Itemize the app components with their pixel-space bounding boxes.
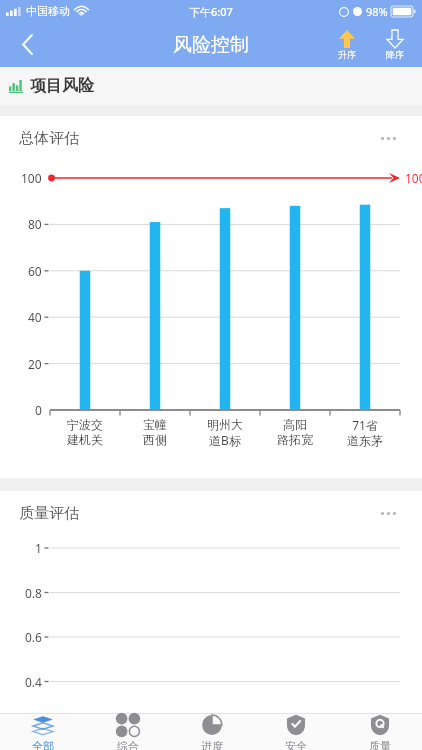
button[interactable]: 质量 <box>338 714 422 750</box>
staticText: 项目风险 <box>30 76 94 96</box>
staticText: 98% <box>366 4 388 19</box>
staticText: 60 <box>28 263 42 279</box>
staticText: 西侧 <box>143 432 167 447</box>
staticText: 质量评估 <box>19 504 79 523</box>
staticText: 风险控制 <box>173 33 249 57</box>
staticText: 中国移动 <box>26 4 70 18</box>
staticText: 升序 <box>338 49 356 60</box>
staticText: 80 <box>28 216 42 232</box>
staticText: 100 <box>21 170 42 186</box>
staticText: 道东茅 <box>347 433 383 448</box>
staticText: 宁波交 <box>67 417 103 432</box>
button[interactable]: 降序 <box>373 22 417 67</box>
staticText: 明州大 <box>207 417 243 432</box>
staticText: 0.8 <box>25 585 42 601</box>
staticText: 高阳 <box>283 417 307 432</box>
staticText: 0.6 <box>25 629 42 645</box>
button[interactable]: 综合 <box>85 714 170 750</box>
staticText: 降序 <box>386 49 404 60</box>
button[interactable]: 安全 <box>254 714 338 750</box>
staticText: 建机关 <box>67 432 103 447</box>
staticText: 总体评估 <box>19 129 79 148</box>
staticText: 100 <box>405 170 422 186</box>
staticText: 安全 <box>285 739 307 750</box>
staticText: 下午6:07 <box>189 4 233 19</box>
staticText: 综合 <box>117 739 139 750</box>
staticText: 1 <box>35 540 42 556</box>
staticText: 全部 <box>32 739 54 750</box>
staticText: 道B标 <box>209 432 241 448</box>
button[interactable]: 进度 <box>170 714 254 750</box>
staticText: 宝幢 <box>143 417 167 432</box>
staticText: 路拓宽 <box>277 432 313 447</box>
button[interactable]: 升序 <box>325 22 369 67</box>
staticText: 质量 <box>369 739 391 750</box>
staticText: 20 <box>28 356 42 372</box>
staticText: 40 <box>28 309 42 325</box>
staticText: 0.4 <box>25 674 42 690</box>
button[interactable]: More options <box>370 497 406 529</box>
button[interactable]: More options <box>370 122 406 154</box>
staticText: 0 <box>35 402 42 418</box>
button[interactable]: Back <box>0 22 54 67</box>
staticText: 71省 <box>352 417 378 433</box>
staticText: 进度 <box>201 739 223 750</box>
button[interactable]: 全部 <box>0 714 85 750</box>
